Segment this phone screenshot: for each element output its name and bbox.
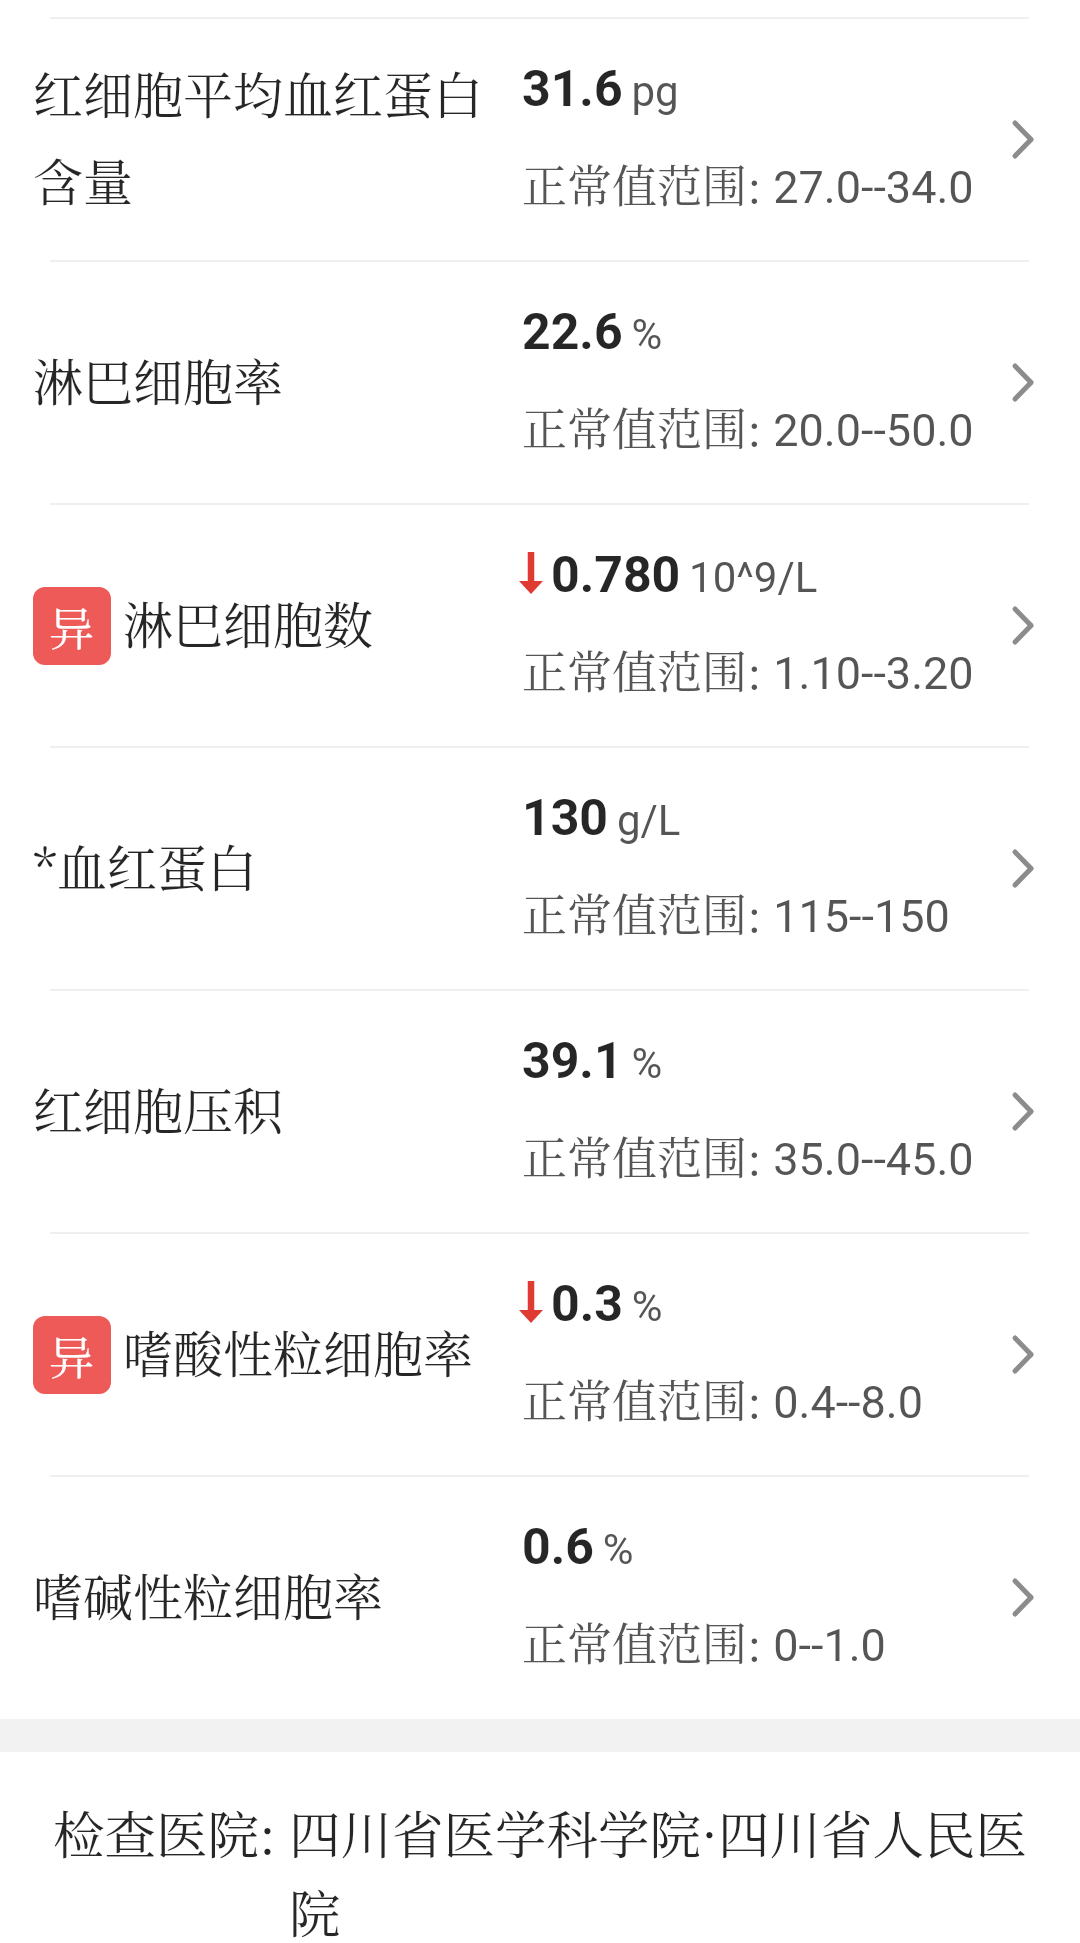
staticText: 正常值范围: 1.10--3.20: [522, 637, 974, 702]
staticText: 正常值范围: 20.0--50.0: [522, 394, 974, 459]
staticText: 正常值范围: 0.4--8.0: [522, 1366, 924, 1431]
staticText: 正常值范围: 115--150: [522, 880, 950, 945]
staticText: 正常值范围: 0--1.0: [522, 1609, 886, 1674]
staticText: 22.6 %: [522, 303, 663, 362]
button[interactable]: 红细胞压积: [0, 991, 1080, 1232]
staticText: 院: [289, 1874, 341, 1943]
button[interactable]: 异: [0, 505, 1080, 746]
staticText: 正常值范围: 27.0--34.0: [522, 151, 974, 216]
staticText: *血红蛋白: [33, 829, 257, 901]
staticText: 130 g/L: [522, 789, 681, 848]
button[interactable]: 淋巴细胞率: [0, 262, 1080, 503]
staticText: 淋巴细胞数: [123, 586, 373, 658]
staticText: 0.3 %: [551, 1275, 663, 1334]
other: 查看详情: [998, 19, 1047, 260]
staticText: 39.1 %: [522, 1032, 663, 1091]
other: 查看详情: [998, 1477, 1047, 1718]
staticText: 嗜碱性粒细胞率: [33, 1558, 383, 1630]
button[interactable]: *血红蛋白: [0, 748, 1080, 989]
staticText: 31.6 pg: [522, 60, 679, 119]
staticText: 淋巴细胞率: [33, 343, 283, 415]
staticText: 0.780 10^9/L: [551, 546, 818, 605]
other: 查看详情: [998, 748, 1047, 989]
staticText: 0.6 %: [522, 1518, 634, 1577]
staticText: 红细胞平均血红蛋白含量: [33, 56, 507, 215]
other: 查看详情: [998, 505, 1047, 746]
staticText: 正常值范围: 35.0--45.0: [522, 1123, 974, 1188]
staticText: 检查医院: 四川省医学科学院·四川省人民医: [0, 1795, 1080, 1869]
staticText: 异: [49, 1323, 95, 1388]
staticText: 异: [49, 594, 95, 659]
other: 查看详情: [998, 1234, 1047, 1475]
other: 查看详情: [998, 991, 1047, 1232]
button[interactable]: 红细胞平均血红蛋白含量: [0, 19, 1080, 260]
button[interactable]: 嗜碱性粒细胞率: [0, 1477, 1080, 1718]
staticText: 嗜酸性粒细胞率: [123, 1315, 473, 1387]
button[interactable]: 异: [0, 1234, 1080, 1475]
other: 查看详情: [998, 262, 1047, 503]
staticText: 红细胞压积: [33, 1072, 283, 1144]
